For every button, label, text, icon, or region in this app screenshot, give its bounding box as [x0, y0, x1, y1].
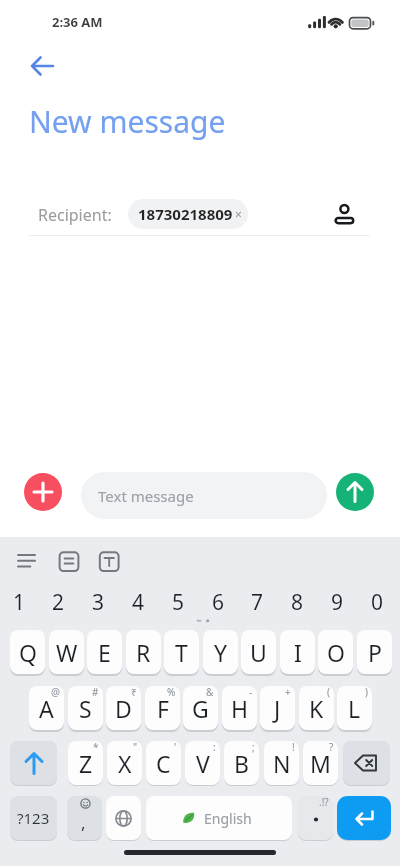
- button[interactable]: 0: [357, 585, 397, 620]
- button[interactable]: [106, 796, 141, 840]
- button[interactable]: O: [318, 630, 353, 674]
- button[interactable]: A: [29, 686, 64, 730]
- button[interactable]: 6: [198, 585, 238, 620]
- button[interactable]: B: [224, 741, 259, 785]
- button[interactable]: 18730218809: [128, 199, 248, 229]
- staticText: English: [204, 809, 252, 828]
- staticText: 3: [92, 588, 105, 617]
- staticText: @: [51, 686, 60, 699]
- staticText: R: [136, 637, 151, 668]
- staticText: ": [133, 741, 138, 754]
- staticText: .!?: [319, 796, 329, 809]
- button[interactable]: 2: [38, 585, 78, 620]
- button[interactable]: H: [222, 686, 257, 730]
- staticText: Y: [214, 637, 228, 668]
- staticText: ?: [329, 741, 334, 754]
- button[interactable]: [343, 741, 390, 785]
- staticText: H: [231, 693, 249, 724]
- button[interactable]: W: [49, 630, 84, 674]
- staticText: V: [196, 748, 210, 779]
- button[interactable]: V: [185, 741, 220, 785]
- staticText: N: [273, 748, 291, 779]
- button[interactable]: [336, 473, 374, 511]
- button[interactable]: [54, 546, 84, 576]
- button[interactable]: Z: [68, 741, 103, 785]
- staticText: 9: [331, 588, 344, 617]
- button[interactable]: G: [183, 686, 218, 730]
- staticText: Z: [79, 748, 93, 779]
- staticText: 0: [371, 588, 384, 617]
- staticText: O: [327, 637, 345, 668]
- staticText: Recipient:: [38, 204, 112, 226]
- button[interactable]: 9: [317, 585, 357, 620]
- staticText: ₹: [131, 686, 137, 699]
- button[interactable]: J: [260, 686, 295, 730]
- button[interactable]: [337, 796, 391, 840]
- staticText: %: [167, 686, 176, 699]
- staticText: G: [192, 693, 209, 724]
- staticText: +: [285, 686, 291, 699]
- button[interactable]: [94, 546, 124, 576]
- staticText: I: [294, 637, 302, 668]
- staticText: !: [292, 741, 295, 754]
- staticText: -: [249, 686, 253, 699]
- button[interactable]: [331, 198, 359, 228]
- button[interactable]: D: [106, 686, 141, 730]
- button[interactable]: 1: [0, 585, 39, 620]
- button[interactable]: X: [107, 741, 142, 785]
- button[interactable]: [12, 546, 42, 576]
- staticText: ×: [235, 206, 242, 222]
- staticText: ): [365, 686, 368, 699]
- staticText: ,: [81, 811, 86, 834]
- button[interactable]: [24, 473, 62, 511]
- staticText: C: [156, 748, 171, 779]
- staticText: L: [348, 693, 361, 724]
- staticText: :: [213, 741, 216, 754]
- staticText: 6: [212, 588, 225, 617]
- staticText: X: [118, 748, 132, 779]
- staticText: M: [310, 748, 331, 779]
- staticText: D: [115, 693, 132, 724]
- staticText: ': [174, 741, 177, 754]
- button[interactable]: ?123: [10, 796, 57, 840]
- button[interactable]: 3: [78, 585, 118, 620]
- button[interactable]: ,: [67, 796, 102, 840]
- button[interactable]: 5: [158, 585, 198, 620]
- button[interactable]: Q: [10, 630, 45, 674]
- button[interactable]: 8: [277, 585, 317, 620]
- staticText: W: [56, 637, 78, 668]
- button[interactable]: Y: [203, 630, 238, 674]
- button[interactable]: E: [87, 630, 122, 674]
- button[interactable]: M: [303, 741, 338, 785]
- button[interactable]: [27, 52, 57, 80]
- button[interactable]: R: [126, 630, 161, 674]
- button[interactable]: P: [357, 630, 392, 674]
- button[interactable]: [10, 741, 57, 785]
- button[interactable]: Text message: [81, 472, 327, 519]
- button[interactable]: 4: [118, 585, 158, 620]
- staticText: K: [309, 693, 324, 724]
- button[interactable]: .!?: [298, 796, 333, 840]
- button[interactable]: T: [164, 630, 199, 674]
- staticText: Text message: [98, 486, 194, 506]
- staticText: ;: [252, 741, 255, 754]
- staticText: 2: [52, 588, 65, 617]
- staticText: Q: [19, 637, 37, 668]
- staticText: A: [39, 693, 54, 724]
- button[interactable]: N: [264, 741, 299, 785]
- button[interactable]: U: [241, 630, 276, 674]
- staticText: New message: [29, 101, 226, 142]
- button[interactable]: C: [146, 741, 181, 785]
- staticText: &: [206, 686, 214, 699]
- staticText: 1: [13, 588, 26, 617]
- button[interactable]: S: [68, 686, 103, 730]
- staticText: F: [157, 693, 169, 724]
- button[interactable]: 7: [237, 585, 277, 620]
- button[interactable]: K: [299, 686, 334, 730]
- staticText: 4: [132, 588, 145, 617]
- button[interactable]: L: [337, 686, 372, 730]
- button[interactable]: English: [146, 796, 292, 840]
- staticText: 2:36 AM: [52, 13, 103, 31]
- button[interactable]: F: [145, 686, 180, 730]
- button[interactable]: I: [280, 630, 315, 674]
